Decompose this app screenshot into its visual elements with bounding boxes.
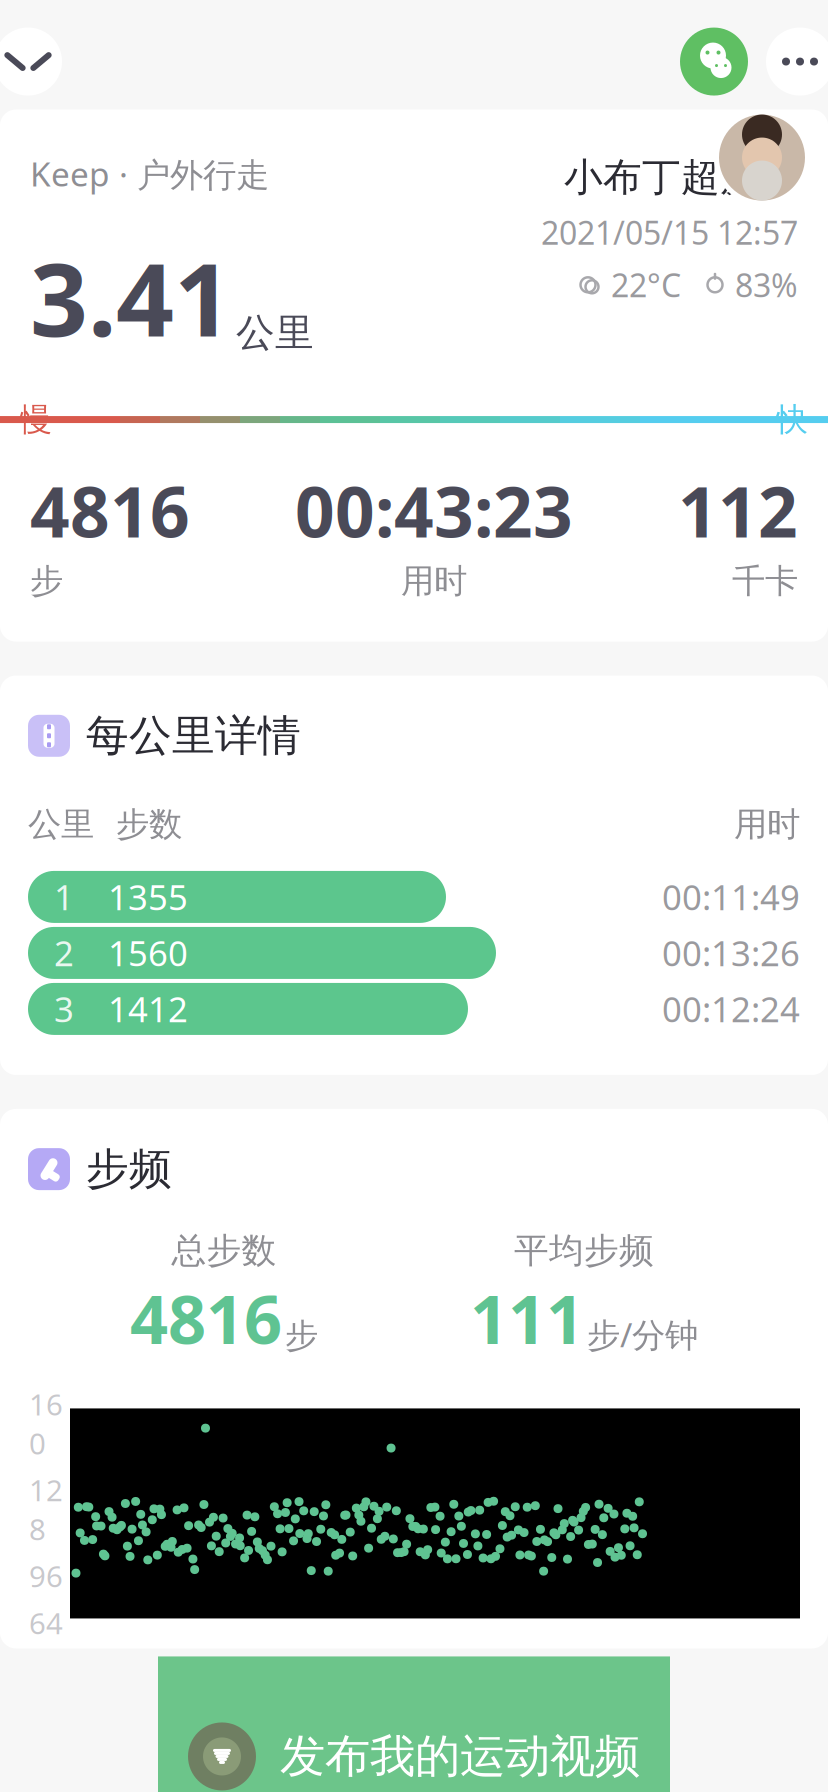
staticText: 平均步频 (514, 1229, 654, 1272)
button[interactable]: 发布我的运动视频 (158, 1708, 670, 1792)
staticText: 步/分钟 (587, 1312, 698, 1356)
staticText: 00:43:23 (295, 465, 573, 557)
staticText: 1355 (108, 874, 188, 920)
staticText: 每公里详情 (86, 710, 301, 762)
staticText: 00:12:24 (662, 986, 800, 1032)
staticText: 4816 (130, 1274, 282, 1362)
staticText: 快 (776, 400, 808, 439)
staticText: 111 (470, 1274, 584, 1362)
staticText: 1 (54, 874, 74, 920)
staticText: 步数 (116, 804, 182, 845)
staticText: 112 (678, 465, 798, 557)
staticText: 4816 (30, 465, 190, 557)
staticText: 步 (30, 561, 63, 601)
staticText: 00:13:26 (662, 930, 800, 976)
staticText: 用时 (734, 804, 800, 845)
staticText: Keep · 户外行走 (30, 152, 269, 196)
staticText: 3 (54, 986, 74, 1032)
staticText: 83% (735, 263, 798, 306)
staticText: 3.41 (30, 230, 232, 365)
staticText: 慢 (20, 400, 52, 439)
staticText: 公里 (236, 309, 314, 357)
staticText: 64 (29, 1603, 63, 1642)
staticText: 2 (54, 930, 74, 976)
staticText: 小布丁超厉害 (564, 154, 798, 201)
staticText: 公里 (28, 804, 94, 845)
button[interactable]: Collapse (0, 28, 62, 96)
staticText: 1412 (108, 986, 188, 1032)
staticText: 千卡 (732, 561, 798, 601)
staticText: 1560 (108, 930, 188, 976)
staticText: 160 (29, 1385, 63, 1462)
staticText: 总步数 (171, 1229, 276, 1272)
button[interactable]: More (766, 28, 828, 96)
staticText: 22°C (611, 263, 681, 306)
staticText: 发布我的运动视频 (280, 1729, 640, 1784)
staticText: 2021/05/15 12:57 (541, 211, 798, 254)
button[interactable]: WeChat (680, 28, 748, 96)
staticText: 96 (29, 1556, 63, 1595)
staticText: 步 (285, 1315, 318, 1356)
staticText: 用时 (401, 561, 467, 601)
staticText: 128 (29, 1470, 63, 1548)
staticText: 步频 (86, 1143, 172, 1195)
staticText: 00:11:49 (662, 874, 800, 920)
